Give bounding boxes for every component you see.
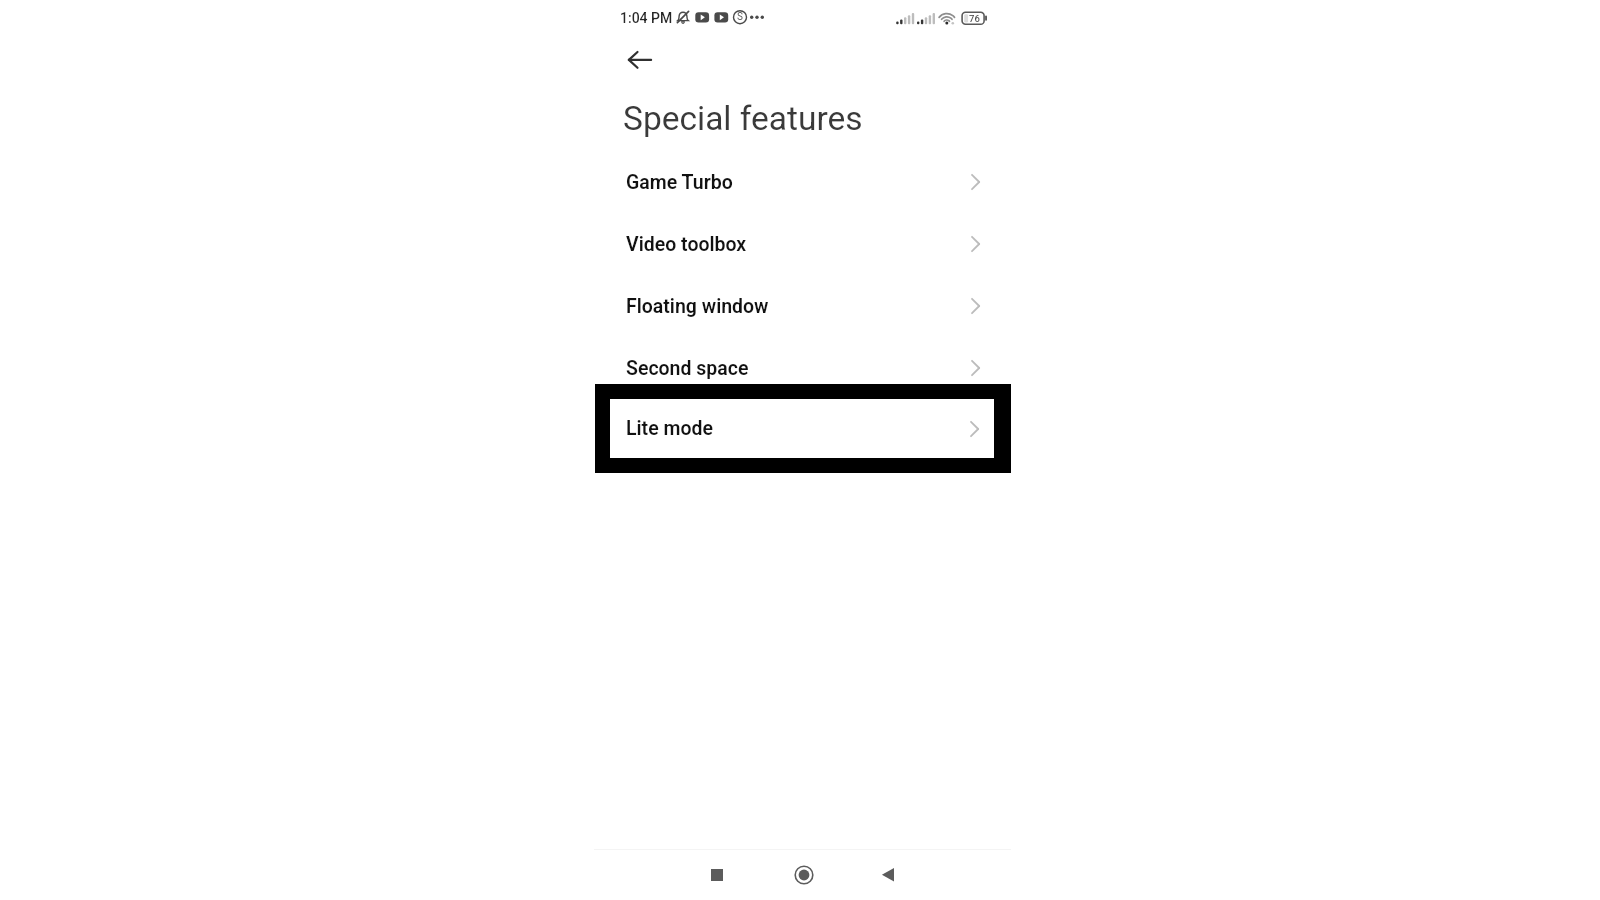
staticText: Lite mode — [626, 419, 713, 442]
staticText: Game Turbo — [626, 171, 733, 194]
staticText: 1:04 PM — [620, 10, 673, 26]
staticText: Second space — [626, 357, 749, 380]
button[interactable]: Floating window — [594, 275, 1011, 337]
button[interactable]: Game Turbo — [594, 151, 1011, 213]
button[interactable]: Second space — [594, 337, 1011, 399]
button[interactable]: Video toolbox — [594, 213, 1011, 275]
staticText: Video toolbox — [626, 233, 747, 256]
button[interactable]: Home — [785, 856, 822, 893]
staticText: Special features — [623, 99, 863, 138]
button[interactable]: Lite mode — [610, 399, 994, 458]
staticText: Lite mode — [626, 417, 713, 440]
button[interactable]: Back — [869, 856, 906, 893]
button[interactable]: Recents — [698, 856, 735, 893]
button[interactable]: Lite mode — [594, 399, 1011, 461]
staticText: S — [737, 11, 743, 23]
staticText: 76 — [969, 13, 980, 24]
staticText: Floating window — [626, 295, 769, 318]
button[interactable]: Back — [610, 42, 656, 78]
